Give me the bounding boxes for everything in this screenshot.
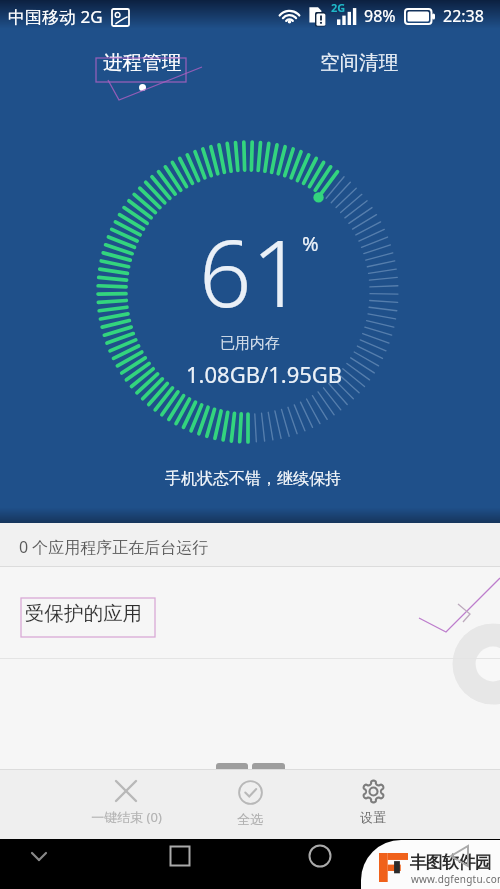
button[interactable]: 设置 <box>310 770 436 839</box>
button[interactable]: Hide <box>22 839 56 873</box>
staticText: 一键结束 (0) <box>91 808 162 826</box>
staticText: 0 个应用程序正在后台运行 <box>19 536 209 558</box>
staticText: 61 <box>199 209 305 334</box>
staticText: 设置 <box>360 809 386 825</box>
staticText: 中国移动 2G <box>8 5 103 28</box>
button[interactable]: 一键结束 (0) <box>63 770 189 839</box>
staticText: www.dgfengtu.com <box>411 872 500 886</box>
button[interactable]: 受保护的应用 <box>0 567 500 657</box>
button[interactable]: Home <box>303 839 337 873</box>
staticText: 进程管理 <box>103 50 181 75</box>
staticText: 22:38 <box>443 5 484 27</box>
staticText: 手机状态不错，继续保持 <box>165 469 341 489</box>
staticText: 98% <box>364 5 396 27</box>
staticText: 空间清理 <box>320 50 398 75</box>
staticText: 受保护的应用 <box>25 601 142 626</box>
button[interactable]: Back <box>444 839 478 873</box>
staticText: 全选 <box>237 811 263 827</box>
staticText: 1.08GB/1.95GB <box>186 359 343 389</box>
button[interactable]: 进程管理 <box>76 50 207 98</box>
staticText: 丰图软件园 <box>410 852 491 873</box>
button[interactable]: Recents <box>163 839 197 873</box>
staticText: 2G <box>331 0 346 15</box>
button[interactable]: 全选 <box>187 770 313 839</box>
staticText: % <box>302 230 319 257</box>
button[interactable]: 空间清理 <box>293 50 424 98</box>
staticText: 已用内存 <box>220 334 280 353</box>
